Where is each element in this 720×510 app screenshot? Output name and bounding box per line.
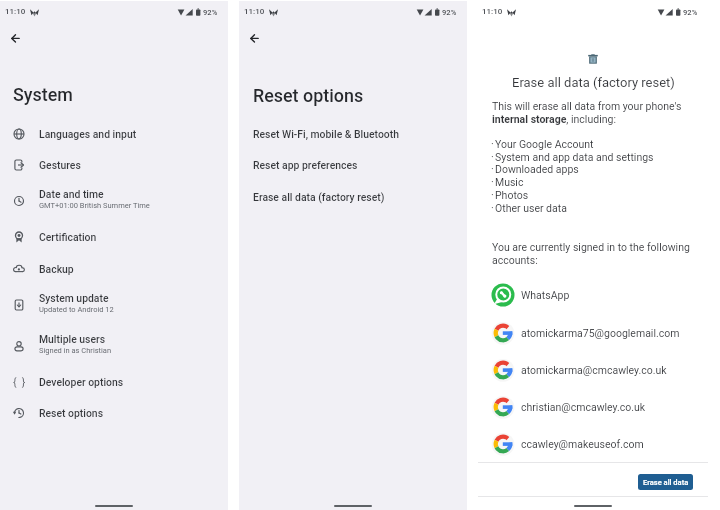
staticText: WhatsApp [521,289,570,301]
button[interactable]: Erase all data [638,474,693,490]
staticText: atomickarma@cmcawley.co.uk [521,364,667,376]
staticText: Gestures [39,159,81,171]
button[interactable]: christian@cmcawley.co.uk [477,389,708,425]
button[interactable]: Certification [0,221,228,252]
staticText: christian@cmcawley.co.uk [521,401,646,413]
staticText: · [491,138,494,150]
staticText: Certification [39,231,97,243]
staticText: internal storage, including: [492,113,616,125]
staticText: 11:10 [482,7,503,16]
button[interactable]: atomickarma75@googlemail.com [477,315,708,351]
staticText: Erase all data (factory reset) [253,191,385,203]
staticText: Reset app preferences [253,159,358,171]
button[interactable]: Back [5,28,26,49]
button[interactable]: System update [0,284,228,325]
staticText: System update [39,292,109,304]
staticText: Your Google Account [495,138,594,150]
staticText: 92% [683,8,698,17]
staticText: This will erase all data from your phone… [492,100,682,112]
button[interactable]: Date and time [0,180,228,221]
staticText: { } [13,376,26,388]
staticText: · [491,176,494,188]
staticText: 11:10 [5,7,26,16]
button[interactable]: Languages and input [0,118,228,149]
staticText: · [491,151,494,163]
staticText: Reset options [39,407,104,419]
staticText: · [491,163,494,175]
staticText: Signed in as Christian [39,346,112,355]
button[interactable]: ccawley@makeuseof.com [477,426,708,462]
button[interactable]: Back [244,28,265,49]
staticText: 92% [203,8,218,17]
staticText: ccawley@makeuseof.com [521,438,644,450]
staticText: Downloaded apps [495,163,579,175]
staticText: GMT+01:00 British Summer Time [39,201,150,210]
button[interactable]: Reset app preferences [239,149,467,180]
staticText: Multiple users [39,333,106,345]
staticText: accounts: [492,254,538,266]
button[interactable]: Gestures [0,149,228,180]
button[interactable]: Reset options [0,397,228,428]
button[interactable]: atomickarma@cmcawley.co.uk [477,352,708,388]
button[interactable]: Developer options [0,366,228,397]
staticText: · [491,189,494,201]
button[interactable]: Multiple users [0,325,228,366]
staticText: Reset options [253,85,364,106]
staticText: 92% [442,8,457,17]
staticText: System [13,84,73,105]
staticText: Photos [495,189,529,201]
staticText: · [491,202,494,214]
button[interactable]: Backup [0,253,228,284]
staticText: System and app data and settings [495,151,654,163]
staticText: Languages and input [39,128,137,140]
staticText: 11:10 [244,7,265,16]
button[interactable]: WhatsApp [477,277,708,313]
staticText: Erase all data (factory reset) [512,75,675,90]
staticText: Date and time [39,188,104,200]
staticText: atomickarma75@googlemail.com [521,327,680,339]
staticText: Other user data [495,202,567,214]
button[interactable]: Erase all data (factory reset) [239,181,467,212]
button[interactable]: Reset Wi-Fi, mobile & Bluetooth [239,118,467,149]
staticText: Music [495,176,524,188]
staticText: Erase all data [643,478,689,487]
staticText: You are currently signed in to the follo… [492,241,690,253]
staticText: Updated to Android 12 [39,305,114,314]
staticText: Developer options [39,376,124,388]
staticText: Backup [39,263,74,275]
staticText: Reset Wi-Fi, mobile & Bluetooth [253,128,399,140]
